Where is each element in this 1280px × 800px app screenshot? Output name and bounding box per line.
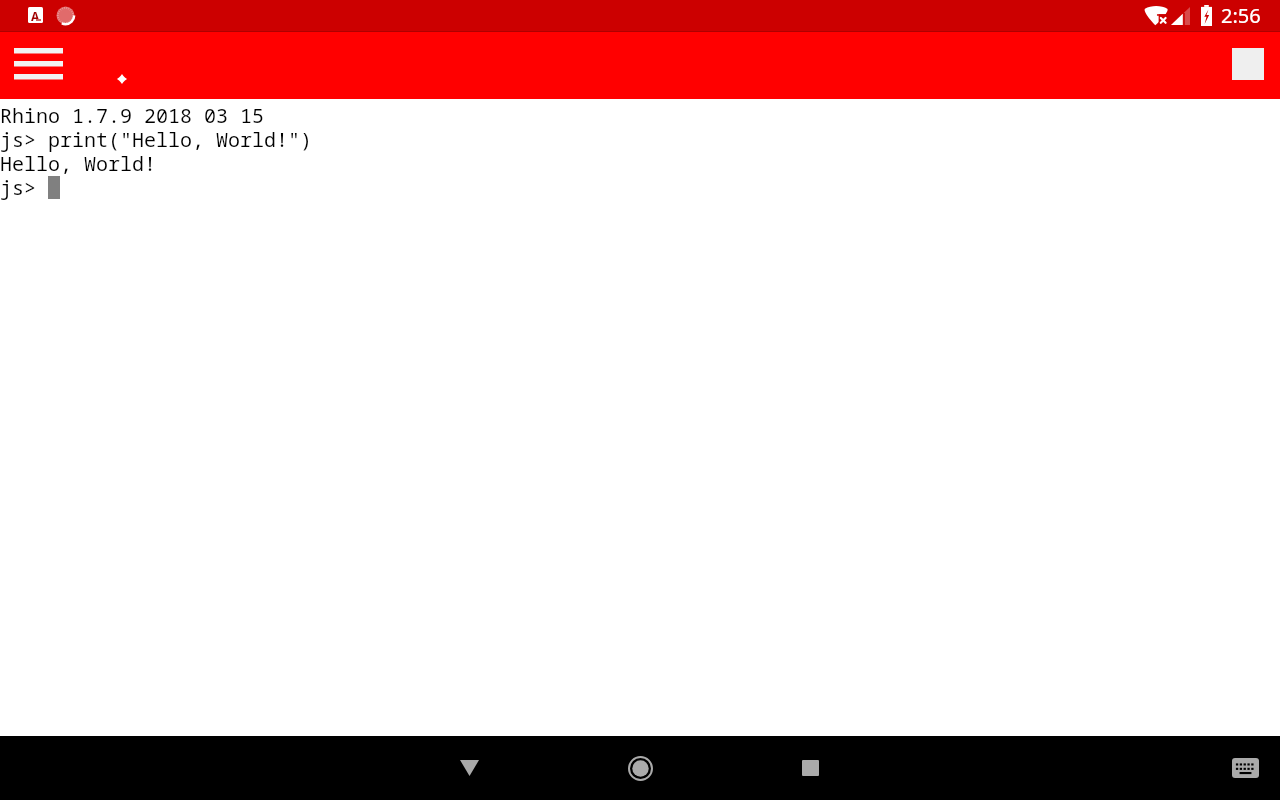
button[interactable]: Open navigation menu [4,38,72,94]
other: Wi-Fi disconnected [1144,5,1168,26]
staticText: 2:56 [1221,2,1261,29]
button[interactable]: Back [437,736,501,800]
staticText: A [31,8,40,23]
button[interactable]: Home [608,736,672,800]
button[interactable]: JavaScript console output [0,99,1280,736]
button[interactable]: Recent apps [778,736,842,800]
button[interactable]: More options [1227,43,1269,85]
other: Mobile signal [1171,7,1190,25]
other: Battery charging [1201,5,1212,26]
staticText: Rhino 1.7.9 2018 03 15 js> print("Hello,… [0,104,312,200]
button[interactable]: Switch keyboard [1221,744,1269,792]
